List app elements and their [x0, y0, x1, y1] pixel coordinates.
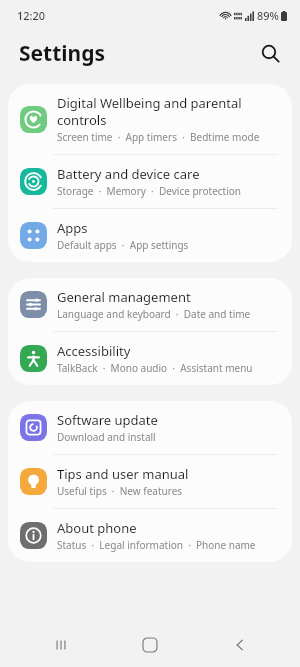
- button[interactable]: Apps: [8, 209, 292, 262]
- staticText: About phone: [57, 519, 137, 537]
- staticText: Accessibility: [57, 342, 131, 360]
- staticText: Useful tips · New features: [57, 484, 183, 498]
- staticText: Battery and device care: [57, 165, 200, 183]
- button[interactable]: Battery and device care: [8, 155, 292, 208]
- staticText: 89%: [257, 8, 279, 23]
- staticText: Tips and user manual: [57, 465, 189, 483]
- staticText: Apps: [57, 219, 88, 237]
- button[interactable]: Back: [211, 625, 269, 665]
- button[interactable]: Home: [121, 625, 179, 665]
- staticText: Default apps · App settings: [57, 238, 189, 252]
- button[interactable]: Recent apps: [32, 625, 90, 665]
- button[interactable]: Tips and user manual: [8, 455, 292, 508]
- staticText: Settings: [19, 39, 106, 68]
- button[interactable]: About phone: [8, 509, 292, 562]
- staticText: Storage · Memory · Device protection: [57, 184, 242, 198]
- staticText: 12:20: [17, 8, 46, 23]
- staticText: Download and install: [57, 430, 156, 444]
- staticText: TalkBack · Mono audio · Assistant menu: [57, 361, 253, 375]
- button[interactable]: Digital Wellbeing and parental controls: [8, 84, 292, 154]
- button[interactable]: Software update: [8, 401, 292, 454]
- staticText: Screen time · App timers · Bedtime mode: [57, 130, 260, 144]
- staticText: Digital Wellbeing and parental controls: [57, 94, 278, 129]
- button[interactable]: Accessibility: [8, 332, 292, 385]
- button[interactable]: Search: [252, 35, 288, 71]
- button[interactable]: General management: [8, 278, 292, 331]
- staticText: General management: [57, 288, 191, 306]
- staticText: Software update: [57, 411, 158, 429]
- staticText: Status · Legal information · Phone name: [57, 538, 256, 552]
- staticText: Language and keyboard · Date and time: [57, 307, 251, 321]
